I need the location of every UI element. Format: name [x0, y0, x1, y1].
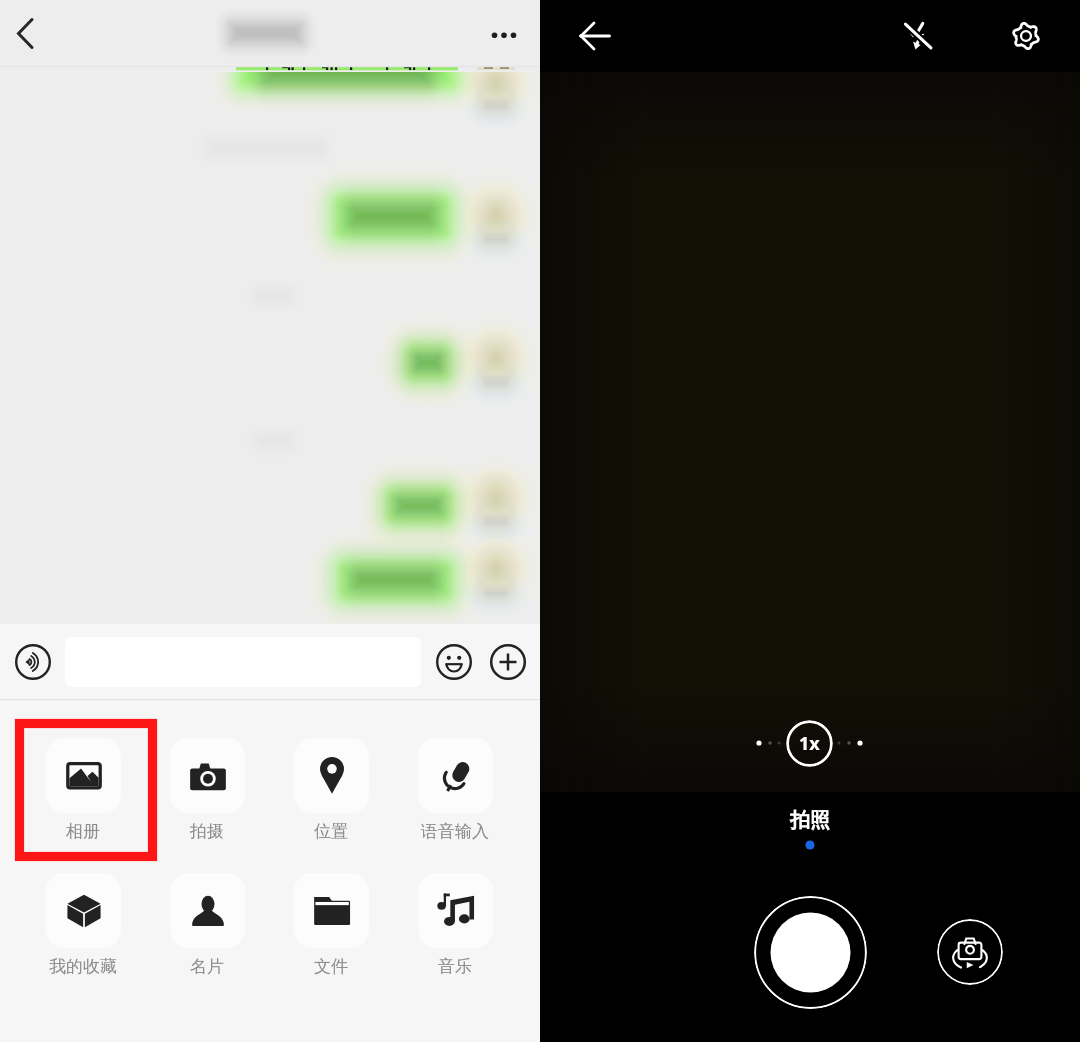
button[interactable]: 音乐 — [405, 873, 505, 977]
staticText: 拍摄 — [190, 821, 224, 842]
button[interactable]: 相册 — [33, 738, 133, 842]
button[interactable]: 我的收藏 — [33, 873, 133, 977]
staticText: 位置 — [314, 821, 348, 842]
button[interactable]: Switch camera — [937, 919, 1003, 985]
button[interactable]: Flash off — [892, 10, 944, 62]
staticText: 名片 — [190, 956, 224, 977]
staticText: 1x — [799, 731, 820, 756]
button[interactable]: 拍照 — [790, 808, 830, 833]
button[interactable]: Settings — [1000, 10, 1052, 62]
button[interactable]: Take photo — [754, 896, 867, 1009]
staticText: 文件 — [314, 956, 348, 977]
button[interactable]: 语音输入 — [405, 738, 505, 842]
staticText: 拍照 — [790, 808, 830, 833]
button[interactable]: Voice input — [14, 643, 52, 681]
button[interactable]: More options — [468, 0, 540, 66]
button[interactable]: Add attachment — [489, 643, 527, 681]
button[interactable]: Emoji — [435, 643, 473, 681]
button[interactable]: 位置 — [281, 738, 381, 842]
button[interactable]: Back — [569, 10, 621, 62]
button[interactable]: Zoom level 1x — [786, 720, 833, 767]
button[interactable]: Back — [0, 0, 54, 66]
staticText: 相册 — [66, 821, 100, 842]
button[interactable]: 拍摄 — [157, 738, 257, 842]
button[interactable]: 名片 — [157, 873, 257, 977]
staticText: 语音输入 — [421, 821, 489, 842]
staticText: 音乐 — [438, 956, 472, 977]
staticText: 我的收藏 — [49, 956, 117, 977]
button[interactable]: 文件 — [281, 873, 381, 977]
